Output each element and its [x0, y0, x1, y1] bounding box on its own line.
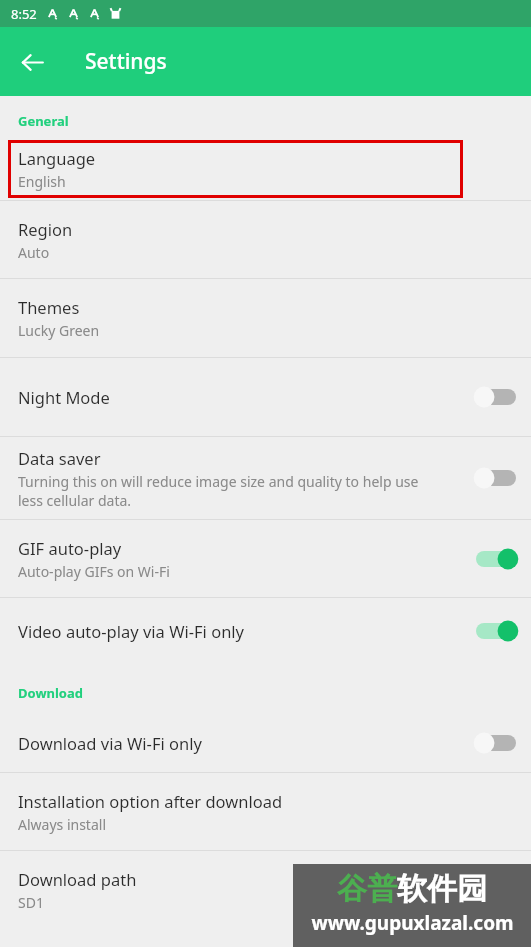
staticText: 谷普	[337, 870, 397, 908]
staticText: SD1	[18, 893, 44, 912]
staticText: Themes	[18, 296, 80, 318]
button[interactable]: Themes	[0, 279, 531, 357]
staticText: www.gupuxlazal.com	[311, 910, 514, 936]
staticText: English	[18, 172, 66, 191]
staticText: Region	[18, 218, 73, 240]
button[interactable]: Language	[8, 140, 463, 198]
staticText: Settings	[85, 47, 167, 76]
button[interactable]: Installation option after download	[0, 773, 531, 850]
staticText: 8:52	[11, 5, 37, 23]
staticText: Download via Wi-Fi only	[18, 732, 202, 754]
other: Off	[474, 730, 518, 756]
button[interactable]: GIF auto-play	[0, 520, 531, 597]
staticText: Download path	[18, 868, 137, 890]
button[interactable]: Data saver	[0, 437, 531, 519]
staticText: Data saver	[18, 447, 101, 469]
button[interactable]: Region	[0, 201, 531, 278]
other: Off	[474, 384, 518, 410]
staticText: 软件园	[397, 870, 487, 908]
staticText: Video auto-play via Wi-Fi only	[18, 620, 245, 642]
staticText: Turning this on will reduce image size a…	[18, 472, 419, 510]
other: On	[474, 546, 518, 572]
button[interactable]: Back	[10, 40, 54, 84]
staticText: Auto	[18, 243, 50, 262]
other: On	[474, 618, 518, 644]
staticText: Night Mode	[18, 386, 110, 408]
staticText: Language	[18, 147, 96, 169]
button[interactable]: Night Mode	[0, 358, 531, 436]
staticText: Installation option after download	[18, 790, 283, 812]
staticText: Download	[18, 684, 83, 702]
staticText: Auto-play GIFs on Wi-Fi	[18, 562, 170, 581]
staticText: Lucky Green	[18, 321, 100, 340]
button[interactable]: Video auto-play via Wi-Fi only	[0, 598, 531, 664]
staticText: GIF auto-play	[18, 537, 122, 559]
other: Off	[474, 465, 518, 491]
staticText: General	[18, 112, 69, 130]
button[interactable]: Download via Wi-Fi only	[0, 714, 531, 772]
staticText: Always install	[18, 815, 107, 834]
button[interactable]: Download path	[0, 851, 531, 928]
